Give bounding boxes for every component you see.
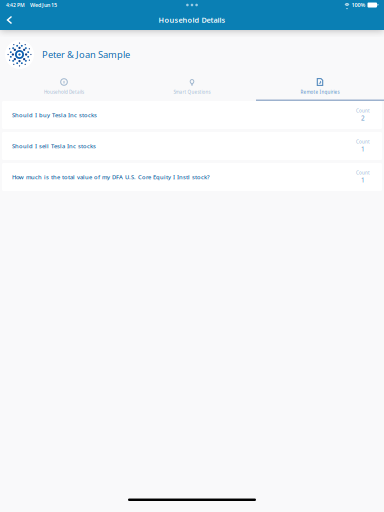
staticText: Household Details bbox=[44, 89, 84, 95]
staticText: Count bbox=[356, 139, 370, 145]
button[interactable]: Remote Inquiries bbox=[256, 73, 384, 101]
staticText: 2 bbox=[361, 114, 365, 122]
staticText: Smart Questions bbox=[173, 89, 210, 95]
button[interactable]: Should I sell Tesla Inc stocks bbox=[2, 132, 382, 160]
button[interactable]: Household Details bbox=[0, 73, 128, 101]
staticText: 1 bbox=[361, 145, 365, 153]
staticText: Count bbox=[356, 108, 370, 114]
button[interactable]: How much is the total value of my DFA U.… bbox=[2, 163, 382, 191]
staticText: 1 bbox=[361, 176, 365, 184]
staticText: Wed Jun 15 bbox=[30, 1, 57, 9]
button[interactable]: Smart Questions bbox=[128, 73, 256, 101]
button[interactable]: Should I buy Tesla Inc stocks bbox=[2, 101, 382, 129]
staticText: 100% bbox=[351, 1, 365, 9]
button[interactable]: Back bbox=[0, 11, 18, 29]
staticText: 4:42 PM bbox=[6, 1, 25, 8]
staticText: Remote Inquiries bbox=[300, 89, 339, 95]
staticText: How much is the total value of my DFA U.… bbox=[12, 173, 210, 181]
staticText: Count bbox=[356, 170, 370, 176]
staticText: Household Details bbox=[158, 15, 225, 25]
staticText: Should I buy Tesla Inc stocks bbox=[12, 111, 97, 119]
staticText: Peter & Joan Sample bbox=[42, 48, 130, 61]
staticText: Should I sell Tesla Inc stocks bbox=[12, 142, 96, 150]
